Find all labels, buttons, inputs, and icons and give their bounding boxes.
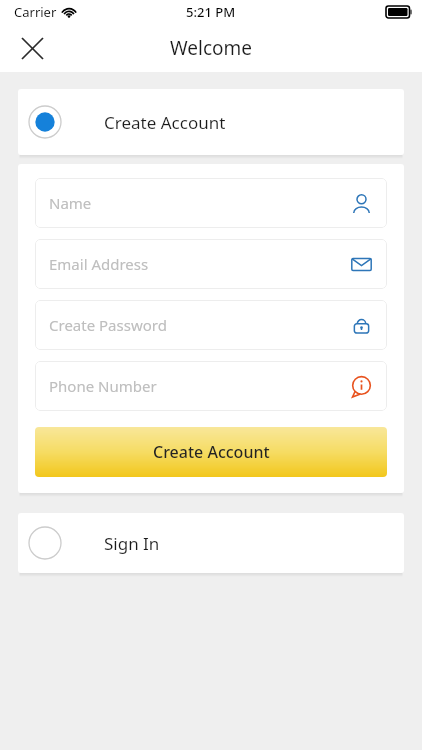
staticText: Phone Number (49, 376, 157, 396)
staticText: Create Account (153, 441, 270, 463)
button[interactable]: Create Account (18, 89, 404, 155)
staticText: Sign In (104, 532, 160, 555)
button[interactable]: Create Account (35, 427, 387, 477)
staticText: Carrier (14, 3, 57, 21)
staticText: Create Account (104, 111, 226, 134)
staticText: Create Password (49, 315, 167, 335)
button[interactable]: Create Password (35, 300, 387, 350)
button[interactable]: Name (35, 178, 387, 228)
button[interactable]: Close (10, 26, 54, 70)
button[interactable]: Sign In (18, 513, 404, 573)
staticText: 5:21 PM (186, 3, 236, 21)
staticText: Email Address (49, 254, 149, 274)
staticText: Welcome (170, 35, 253, 61)
button[interactable]: Email Address (35, 239, 387, 289)
staticText: Name (49, 193, 92, 213)
button[interactable]: Phone Number (35, 361, 387, 411)
